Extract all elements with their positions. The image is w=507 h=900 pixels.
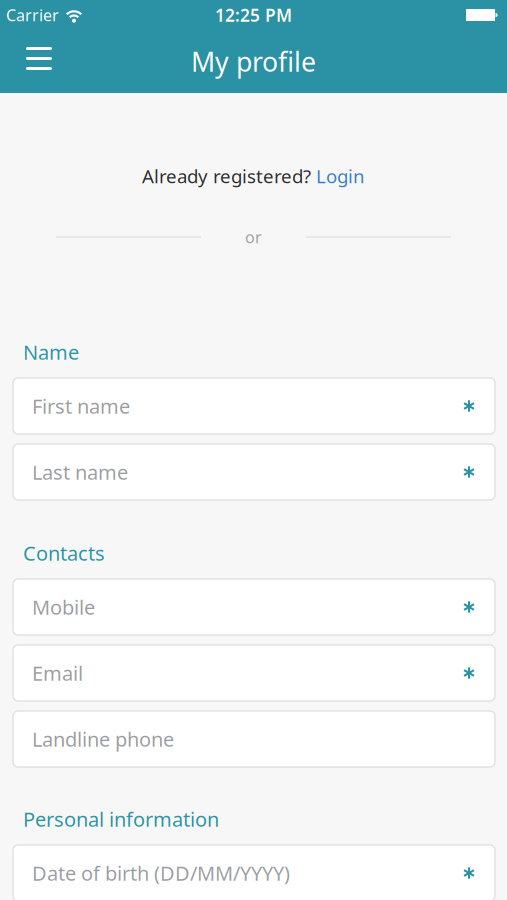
staticText: Login [316,164,365,188]
button[interactable]: Login [316,164,365,188]
staticText: Date of birth (DD/MM/YYYY) [32,860,290,886]
button[interactable]: Date of birth (DD/MM/YYYY) [13,845,495,900]
staticText: 12:25 PM [215,3,292,26]
staticText: Last name [32,459,128,485]
staticText: Contacts [23,540,105,566]
staticText: Name [23,339,79,365]
staticText: Landline phone [32,726,174,752]
button[interactable]: First name [13,378,495,434]
staticText: Already registered? [142,164,316,188]
staticText: Carrier [6,4,59,26]
staticText: My profile [191,44,316,79]
staticText: Email [32,660,83,686]
button[interactable] [17,39,61,83]
button[interactable]: Landline phone [13,711,495,767]
staticText: Mobile [32,594,95,620]
staticText: First name [32,393,130,419]
button[interactable]: Email [13,645,495,701]
button[interactable]: Last name [13,444,495,500]
staticText: Personal information [23,806,219,832]
button[interactable]: Mobile [13,579,495,635]
staticText: or [245,226,262,248]
